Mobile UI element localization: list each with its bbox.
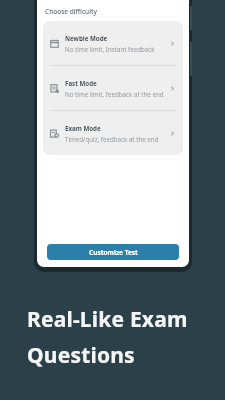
button[interactable]: Customize Test	[47, 244, 179, 260]
other: Mode icon	[50, 84, 59, 93]
staticText: Fast Mode	[65, 79, 97, 87]
staticText: Real-Like Exam	[27, 305, 188, 334]
other: Mode icon	[50, 129, 59, 138]
staticText: Timed/quiz, feedback at the end	[65, 135, 159, 143]
staticText: Choose difficulty	[45, 7, 97, 16]
staticText: Questions	[27, 341, 135, 370]
button[interactable]: Mode icon	[43, 66, 183, 110]
staticText: No time limit, feedback at the end	[65, 90, 164, 98]
staticText: Exam Mode	[65, 124, 101, 132]
staticText: No time limit, Instant feedback	[65, 45, 155, 53]
staticText: Customize Test	[89, 248, 138, 257]
staticText: Newbie Mode	[65, 34, 108, 42]
button[interactable]: Mode icon	[43, 111, 183, 155]
button[interactable]: Mode icon	[43, 21, 183, 65]
other: Mode icon	[50, 39, 59, 48]
